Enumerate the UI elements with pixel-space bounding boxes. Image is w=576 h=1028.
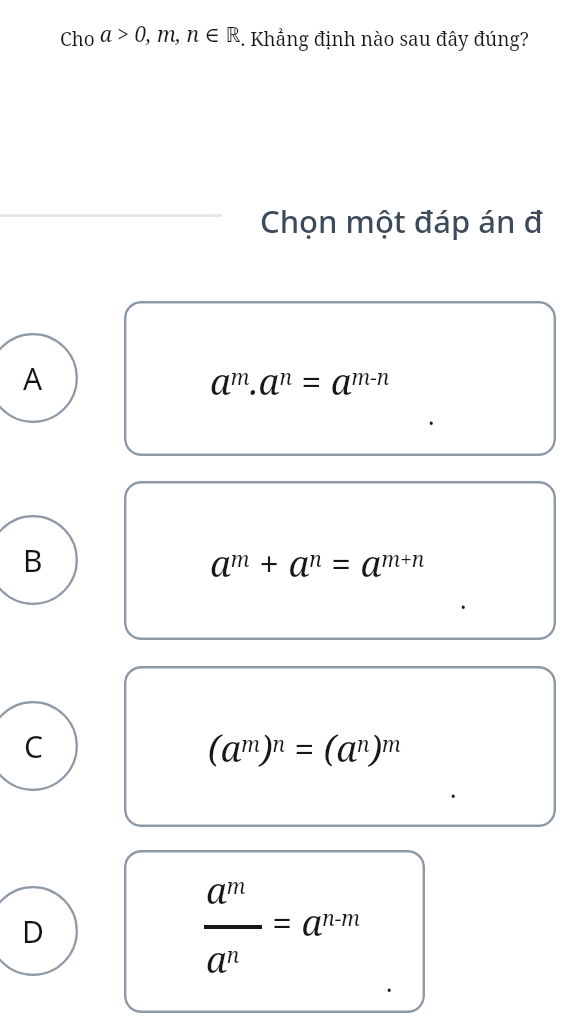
staticText: A — [23, 358, 43, 399]
staticText: . — [450, 770, 457, 805]
button[interactable]: Option C — [0, 701, 78, 791]
staticText: Chọn một đáp án đ — [260, 200, 543, 242]
button[interactable]: am + an = am+n — [124, 481, 556, 640]
staticText: am + an = am+n — [210, 539, 425, 588]
button[interactable]: Option A — [0, 333, 78, 423]
staticText: am.an = am−n — [210, 357, 390, 406]
staticText: . — [386, 964, 393, 999]
button[interactable]: Option B — [0, 515, 78, 605]
staticText: (am)n = (an)m — [208, 724, 401, 773]
staticText: . — [428, 397, 435, 432]
staticText: an — [206, 935, 240, 984]
staticText: B — [23, 540, 43, 581]
staticText: . — [460, 581, 467, 616]
staticText: C — [24, 726, 43, 767]
staticText: D — [22, 911, 44, 952]
button[interactable]: Option D — [0, 886, 78, 976]
button[interactable]: am.an = am−n — [124, 301, 556, 456]
staticText: am — [206, 866, 246, 915]
button[interactable]: am — [124, 850, 425, 1013]
button[interactable]: (am)n = (an)m — [124, 666, 556, 827]
staticText: Cho a > 0, m, n ∈ ℝ. Khẳng định nào sau … — [60, 20, 529, 52]
staticText: = an−m — [272, 898, 361, 947]
